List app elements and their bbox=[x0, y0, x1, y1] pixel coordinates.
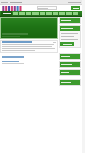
button[interactable] bbox=[60, 54, 80, 59]
button[interactable] bbox=[68, 2, 82, 3]
button[interactable] bbox=[60, 38, 80, 41]
button[interactable] bbox=[60, 18, 80, 23]
button[interactable] bbox=[0, 17, 58, 39]
button[interactable] bbox=[60, 62, 80, 67]
button[interactable] bbox=[0, 2, 8, 3]
button[interactable] bbox=[37, 6, 57, 10]
button[interactable] bbox=[60, 42, 74, 46]
button[interactable] bbox=[60, 70, 80, 75]
button[interactable] bbox=[60, 35, 80, 38]
button[interactable] bbox=[60, 80, 80, 85]
button[interactable] bbox=[71, 6, 80, 10]
button[interactable] bbox=[60, 26, 80, 31]
button[interactable] bbox=[1, 11, 12, 16]
button[interactable] bbox=[60, 32, 80, 35]
button[interactable]: Home logo bbox=[1, 6, 23, 11]
